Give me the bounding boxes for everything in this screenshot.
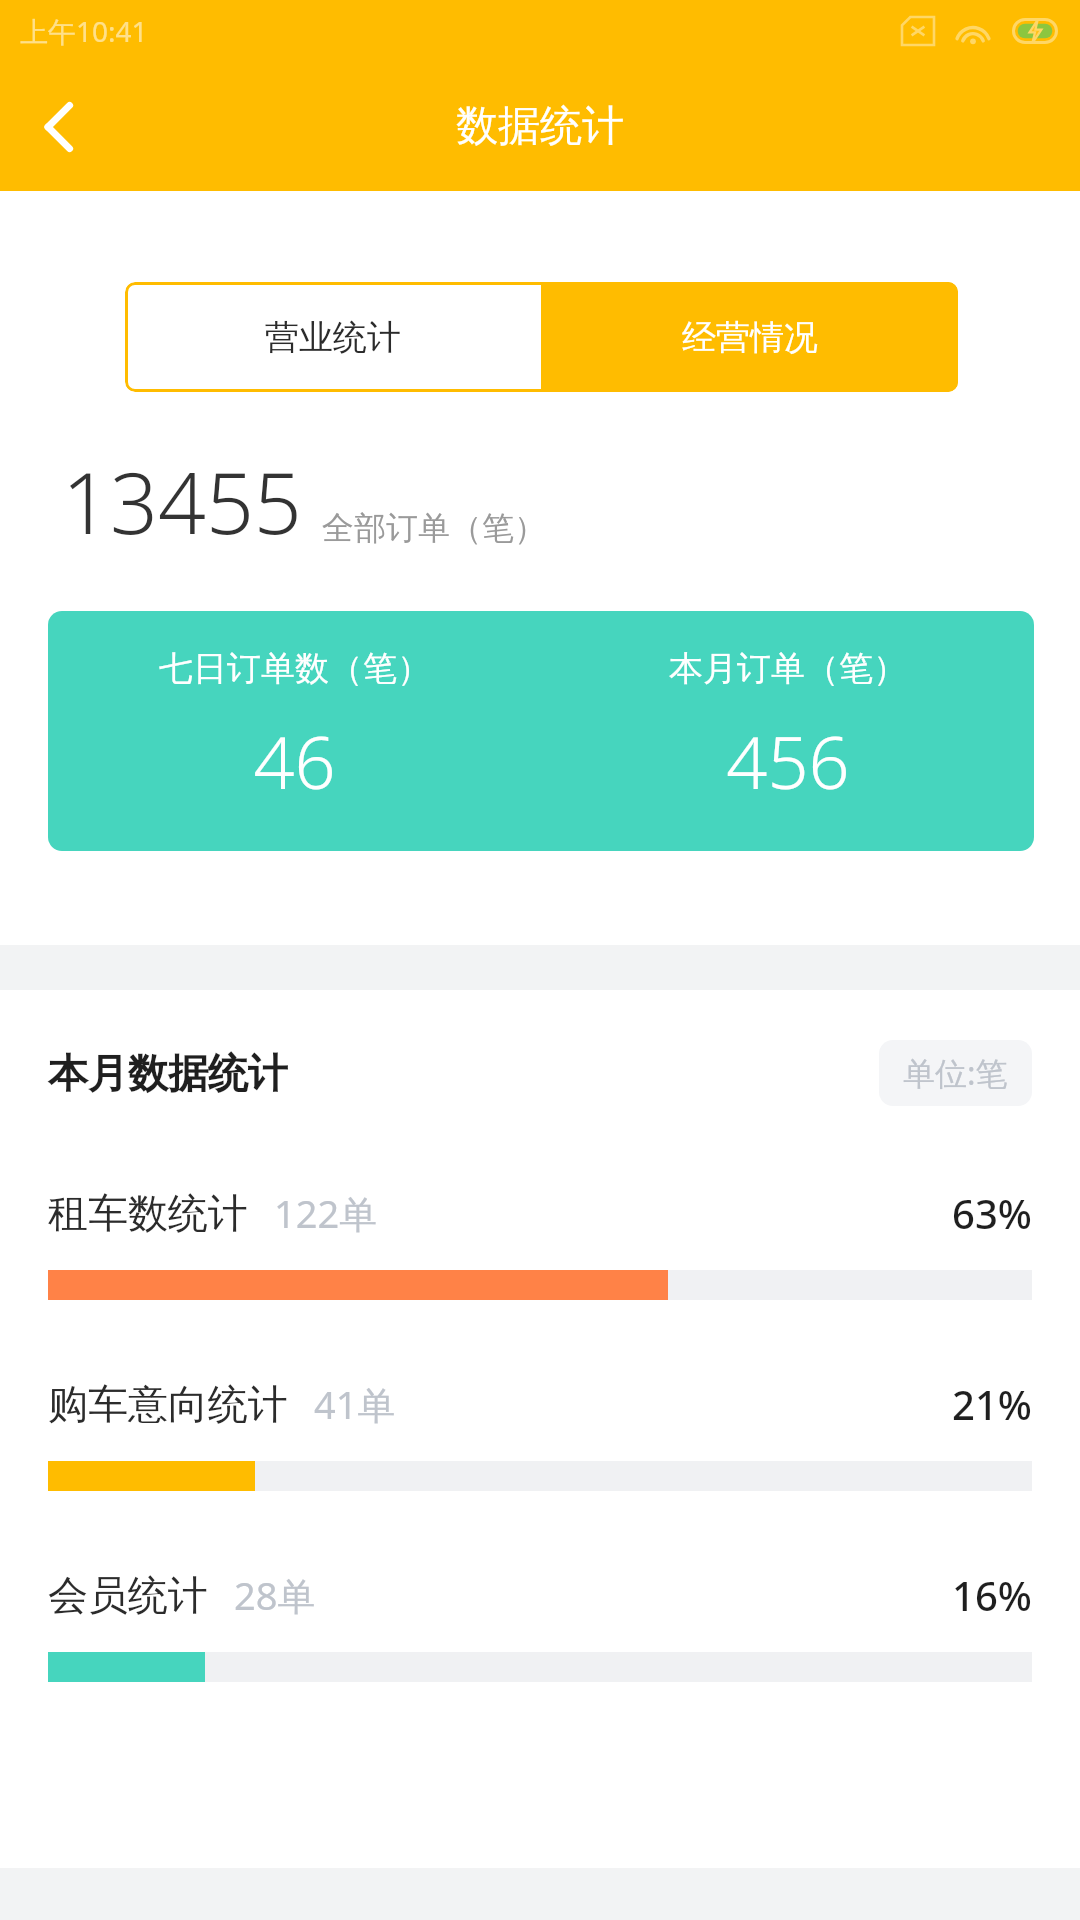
staticText: 购车意向统计	[48, 1379, 288, 1429]
button[interactable]: 购车意向统计	[0, 1377, 1080, 1491]
staticText: 租车数统计	[48, 1188, 248, 1238]
staticText: 46	[253, 712, 336, 810]
staticText: 本月订单（笔）	[669, 647, 907, 690]
staticText: 21%	[952, 1377, 1032, 1431]
staticText: 七日订单数（笔）	[159, 647, 431, 690]
staticText: 经营情况	[682, 316, 818, 359]
staticText: 28单	[234, 1569, 316, 1621]
button[interactable]: 营业统计	[125, 282, 541, 392]
button[interactable]: Back	[14, 81, 106, 173]
staticText: 456	[726, 712, 850, 810]
button[interactable]: 经营情况	[541, 282, 958, 392]
staticText: 单位:笔	[903, 1051, 1008, 1095]
staticText: 13455	[62, 444, 302, 558]
staticText: 会员统计	[48, 1570, 208, 1620]
staticText: 本月数据统计	[48, 1048, 288, 1098]
staticText: 16%	[952, 1568, 1032, 1622]
staticText: 上午10:41	[20, 12, 148, 50]
button[interactable]: 租车数统计	[0, 1186, 1080, 1300]
staticText: 63%	[952, 1186, 1032, 1240]
staticText: 数据统计	[456, 100, 624, 153]
staticText: 全部订单（笔）	[322, 508, 546, 548]
staticText: 41单	[314, 1378, 396, 1430]
button[interactable]: 会员统计	[0, 1568, 1080, 1682]
staticText: 122单	[274, 1187, 378, 1239]
staticText: 营业统计	[265, 316, 401, 359]
button[interactable]: 单位:笔	[879, 1040, 1032, 1106]
